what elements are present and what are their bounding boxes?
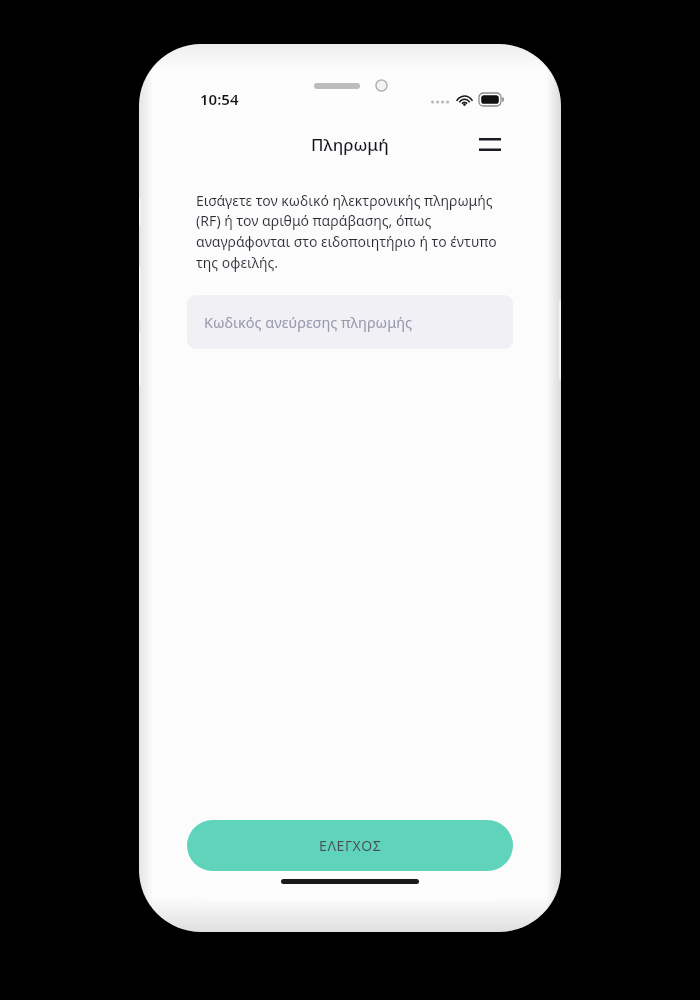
staticText: Εισάγετε τον κωδικό ηλεκτρονικής πληρωμή… [196, 191, 504, 273]
staticText: 10:54 [200, 89, 239, 109]
button[interactable]: Κωδικός ανεύρεσης πληρωμής [187, 295, 513, 349]
button[interactable]: ΕΛΕΓΧΟΣ [187, 820, 513, 871]
staticText: Κωδικός ανεύρεσης πληρωμής [204, 312, 413, 332]
staticText: Πληρωμή [311, 133, 389, 156]
staticText: ΕΛΕΓΧΟΣ [319, 836, 382, 855]
button[interactable]: Menu [468, 122, 512, 166]
